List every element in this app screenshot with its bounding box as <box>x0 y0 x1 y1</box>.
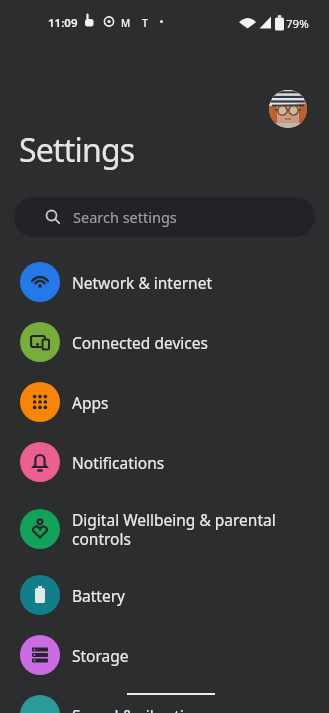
staticText: Settings <box>19 128 135 172</box>
staticText: Sound & vibration <box>72 705 203 713</box>
staticText: Battery <box>72 585 126 606</box>
button[interactable] <box>269 90 307 128</box>
button[interactable]: Storage <box>0 625 329 685</box>
button[interactable]: Network & internet <box>0 252 329 312</box>
button[interactable]: Connected devices <box>0 312 329 372</box>
staticText: Notifications <box>72 452 165 473</box>
staticText: Digital Wellbeing & parental controls <box>72 509 276 549</box>
staticText: Storage <box>72 645 129 666</box>
staticText: M <box>121 16 131 30</box>
button[interactable]: Sound & vibration <box>0 685 329 713</box>
button[interactable]: Search settings <box>14 197 315 237</box>
staticText: Apps <box>72 392 109 413</box>
staticText: 79% <box>286 16 309 32</box>
staticText: T <box>142 16 148 30</box>
button[interactable]: Digital Wellbeing & parental controls <box>0 492 329 565</box>
button[interactable]: Battery <box>0 565 329 625</box>
staticText: Search settings <box>73 207 177 227</box>
button[interactable]: Apps <box>0 372 329 432</box>
staticText: Network & internet <box>72 272 212 293</box>
staticText: Connected devices <box>72 332 208 353</box>
button[interactable]: Notifications <box>0 432 329 492</box>
staticText: 11:09 <box>48 15 78 31</box>
